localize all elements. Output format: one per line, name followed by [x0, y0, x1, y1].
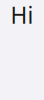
staticText: Hi: [10, 0, 33, 30]
